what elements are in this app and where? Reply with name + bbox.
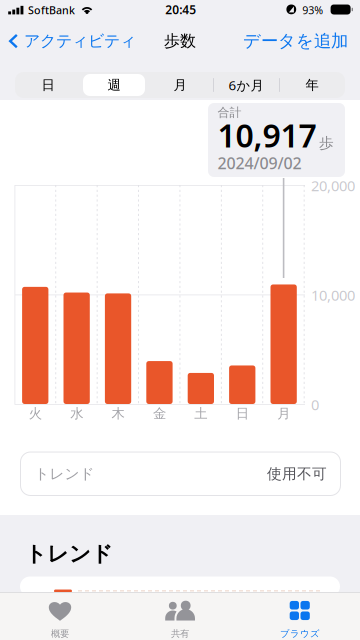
button[interactable]: ブラウズ <box>240 592 360 640</box>
button[interactable]: 月 <box>147 72 213 98</box>
staticText: 週 <box>107 77 120 93</box>
button[interactable]: トレンド <box>20 452 340 495</box>
button[interactable]: 6か月 <box>213 72 279 98</box>
staticText: 10,000 <box>311 285 355 305</box>
staticText: 火 <box>29 405 42 422</box>
staticText: トレンド <box>25 541 113 567</box>
staticText: 20:45 <box>165 2 196 17</box>
button[interactable]: 年 <box>279 72 345 98</box>
button[interactable]: データを追加 <box>237 26 354 56</box>
staticText: 日 <box>236 405 249 422</box>
staticText: トレンド <box>34 465 94 483</box>
staticText: 2024/09/02 <box>217 152 301 174</box>
staticText: アクティビティ <box>24 31 136 51</box>
button[interactable]: 週 <box>81 72 147 98</box>
staticText: 0 <box>311 395 319 414</box>
staticText: 6か月 <box>228 76 263 94</box>
button[interactable]: 日 <box>15 72 81 98</box>
staticText: 20,000 <box>311 176 355 195</box>
staticText: 木 <box>111 405 124 422</box>
staticText: ブラウズ <box>280 628 320 639</box>
staticText: データを追加 <box>243 30 348 52</box>
staticText: 使用不可 <box>267 465 327 483</box>
staticText: 月 <box>277 405 290 422</box>
staticText: 歩数 <box>164 31 196 51</box>
staticText: 水 <box>70 405 83 422</box>
staticText: 年 <box>305 77 318 93</box>
staticText: 10,917 <box>217 114 316 156</box>
staticText: 月 <box>173 77 186 93</box>
staticText: 共有 <box>171 628 189 639</box>
button[interactable]: 共有 <box>120 592 240 640</box>
staticText: 金 <box>153 405 166 422</box>
staticText: 合計 <box>217 105 241 120</box>
button[interactable]: 概要 <box>0 592 120 640</box>
staticText: 93% <box>302 3 323 17</box>
staticText: 日 <box>41 77 54 93</box>
staticText: 概要 <box>51 628 69 639</box>
button[interactable]: アクティビティ <box>2 26 144 56</box>
staticText: 土 <box>194 405 207 422</box>
staticText: SoftBank <box>28 3 75 17</box>
staticText: 歩 <box>319 134 334 152</box>
